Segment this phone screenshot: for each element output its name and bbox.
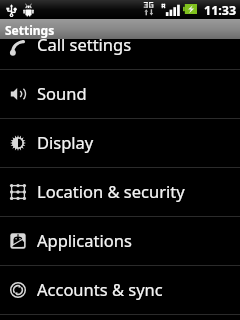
staticText: Applications: [37, 229, 132, 251]
staticText: Settings: [5, 22, 55, 38]
button[interactable]: Sound: [0, 70, 240, 118]
button[interactable]: Applications: [0, 217, 240, 265]
staticText: Call settings: [37, 33, 132, 55]
staticText: Display: [37, 131, 94, 153]
staticText: Accounts & sync: [37, 278, 163, 300]
button[interactable]: Accounts & sync: [0, 266, 240, 314]
button[interactable]: Location & security: [0, 168, 240, 216]
staticText: Location & security: [37, 180, 185, 202]
button[interactable]: Call settings: [0, 39, 240, 69]
button[interactable]: Display: [0, 119, 240, 167]
staticText: 11:33: [204, 2, 237, 19]
staticText: Sound: [37, 82, 87, 104]
